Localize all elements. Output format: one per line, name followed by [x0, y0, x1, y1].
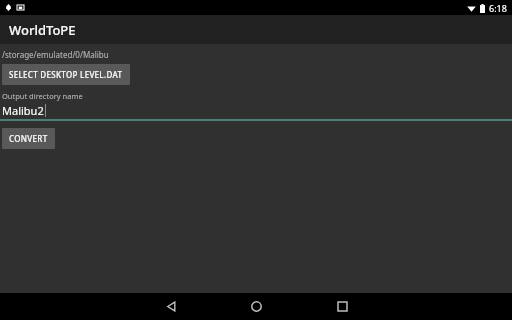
- staticText: CONVERT: [9, 133, 48, 144]
- staticText: SELECT DESKTOP LEVEL.DAT: [9, 69, 123, 80]
- button[interactable]: Malibu2: [0, 103, 512, 121]
- button[interactable]: SELECT DESKTOP LEVEL.DAT: [2, 64, 130, 85]
- staticText: Output directory name: [2, 91, 83, 101]
- button[interactable]: Home: [242, 293, 270, 320]
- button[interactable]: Recent apps: [328, 293, 356, 320]
- button[interactable]: CONVERT: [2, 128, 55, 149]
- staticText: /storage/emulated/0/Malibu: [2, 49, 109, 60]
- button[interactable]: Back: [157, 293, 185, 320]
- staticText: 6:18: [489, 2, 507, 14]
- staticText: WorldToPE: [9, 21, 76, 39]
- staticText: Malibu2: [2, 103, 44, 118]
